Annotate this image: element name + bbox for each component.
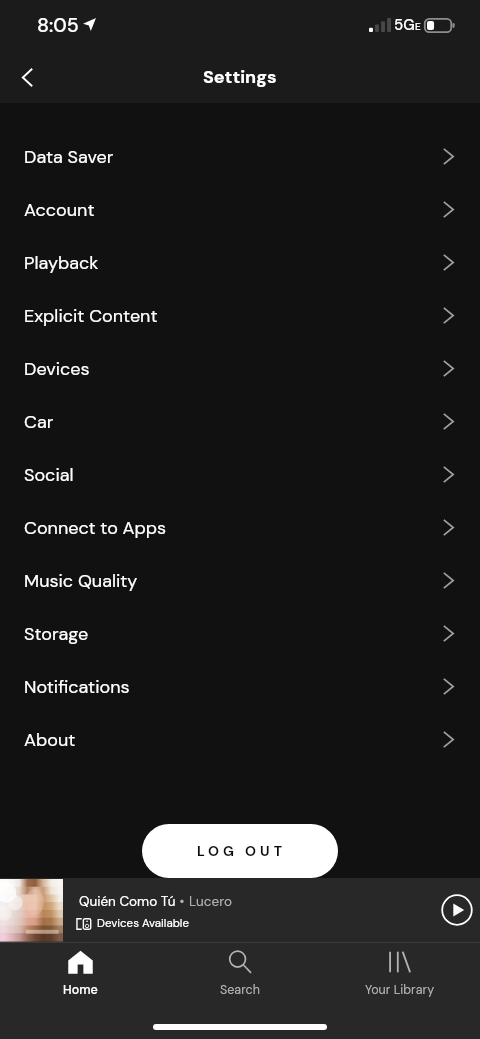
button[interactable]: Back: [0, 52, 56, 103]
button[interactable]: Explicit Content: [0, 289, 480, 342]
staticText: Connect to Apps: [24, 516, 167, 539]
staticText: Data Saver: [24, 145, 114, 168]
staticText: Settings: [203, 65, 277, 88]
staticText: Social: [24, 463, 74, 486]
staticText: •: [176, 893, 189, 911]
button[interactable]: Notifications: [0, 660, 480, 713]
button[interactable]: Play: [435, 888, 479, 932]
staticText: Home: [63, 982, 98, 998]
staticText: Quién Como Tú: [79, 893, 176, 911]
button[interactable]: Connect to Apps: [0, 501, 480, 554]
staticText: Explicit Content: [24, 304, 158, 327]
staticText: LOG OUT: [197, 842, 287, 860]
button[interactable]: Account: [0, 183, 480, 236]
staticText: 5G: [394, 15, 415, 35]
button[interactable]: Storage: [0, 607, 480, 660]
staticText: Your Library: [365, 982, 435, 998]
staticText: Search: [220, 982, 260, 998]
button[interactable]: Search: [160, 943, 320, 1004]
button[interactable]: Devices: [0, 342, 480, 395]
staticText: Devices: [24, 357, 90, 380]
button[interactable]: About: [0, 713, 480, 766]
staticText: Lucero: [189, 893, 232, 911]
staticText: 8:05: [37, 13, 79, 38]
button[interactable]: Your Library: [320, 943, 480, 1004]
button[interactable]: Home: [0, 943, 160, 1004]
staticText: Account: [24, 198, 95, 221]
staticText: Playback: [24, 251, 99, 274]
staticText: About: [24, 728, 76, 751]
button[interactable]: Playback: [0, 236, 480, 289]
staticText: Music Quality: [24, 569, 138, 592]
staticText: Storage: [24, 622, 89, 645]
button[interactable]: LOG OUT: [142, 824, 338, 878]
button[interactable]: Music Quality: [0, 554, 480, 607]
button[interactable]: Social: [0, 448, 480, 501]
button[interactable]: Car: [0, 395, 480, 448]
staticText: Car: [24, 410, 54, 433]
staticText: E: [415, 20, 421, 33]
staticText: Notifications: [24, 675, 130, 698]
button[interactable]: Data Saver: [0, 130, 480, 183]
staticText: Devices Available: [97, 916, 189, 931]
